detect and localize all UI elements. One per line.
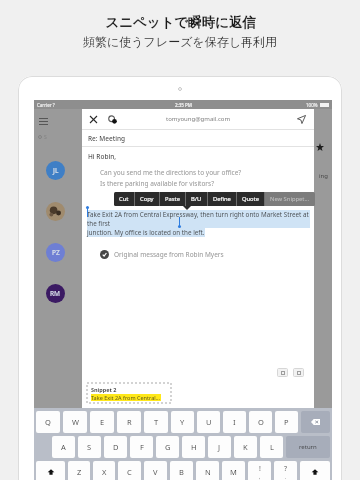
button[interactable]: R	[117, 411, 141, 433]
button[interactable]: V	[144, 461, 167, 480]
staticText: New Snippet...	[270, 195, 310, 203]
button[interactable]: Shift	[36, 461, 65, 480]
button[interactable]: B	[170, 461, 193, 480]
staticText: X	[102, 467, 107, 477]
staticText: Q	[45, 417, 51, 427]
button[interactable]: L	[260, 436, 283, 458]
button[interactable]: E	[90, 411, 114, 433]
button[interactable]: P	[275, 411, 298, 433]
button[interactable]: Cut	[114, 192, 134, 206]
button[interactable]: Backspace	[301, 411, 330, 433]
staticText: Y	[180, 417, 185, 427]
button[interactable]: D	[104, 436, 127, 458]
staticText: B	[179, 467, 184, 477]
staticText: T	[154, 417, 159, 427]
button[interactable]: Send	[295, 113, 307, 125]
button[interactable]: JL	[46, 161, 65, 180]
staticText: スニペットで瞬時に返信	[105, 14, 256, 31]
button[interactable]: N	[196, 461, 219, 480]
staticText: Take Exit 2A from Central...	[91, 394, 161, 401]
staticText: Is there parking available for visitors?	[100, 179, 214, 188]
button[interactable]: Snippet 2	[87, 383, 171, 403]
staticText: V	[153, 467, 158, 477]
staticText: PZ	[52, 248, 60, 257]
button[interactable]: I	[223, 411, 246, 433]
button[interactable]: U	[197, 411, 220, 433]
button[interactable]: Shift	[300, 461, 330, 480]
staticText: Re: Meeting	[88, 134, 126, 143]
button[interactable]	[46, 202, 65, 221]
staticText: 100%	[306, 102, 318, 108]
staticText: Paste	[165, 195, 180, 203]
staticText: Z	[77, 467, 82, 477]
button[interactable]: Define	[208, 192, 236, 206]
button[interactable]: Close	[88, 114, 99, 125]
button[interactable]: Next field	[293, 368, 304, 377]
staticText: K	[243, 442, 248, 452]
staticText: J	[218, 442, 221, 452]
staticText: Define	[213, 195, 231, 203]
staticText: !	[259, 464, 261, 474]
staticText: S	[87, 442, 92, 452]
staticText: P	[284, 417, 289, 427]
button[interactable]: Copy	[135, 192, 159, 206]
staticText: S	[44, 134, 47, 141]
staticText: Copy	[140, 195, 154, 203]
button[interactable]: return	[286, 436, 330, 458]
button[interactable]: S	[78, 436, 101, 458]
staticText: D	[113, 442, 119, 452]
staticText: JL	[53, 166, 59, 175]
button[interactable]: Attachments	[106, 113, 118, 125]
staticText: tomyoung@gmail.com	[166, 115, 231, 123]
button[interactable]: O	[249, 411, 272, 433]
staticText: return	[299, 443, 317, 451]
staticText: B/U	[191, 195, 202, 203]
button[interactable]: H	[182, 436, 205, 458]
staticText: I	[233, 417, 236, 427]
staticText: W	[72, 417, 79, 427]
staticText: C	[127, 467, 132, 477]
button[interactable]: Menu	[34, 113, 82, 130]
button[interactable]: PZ	[46, 243, 65, 262]
button[interactable]: RM	[46, 284, 65, 303]
button[interactable]: B/U	[186, 192, 207, 206]
button[interactable]: !	[248, 461, 271, 480]
button[interactable]: C	[118, 461, 141, 480]
staticText: Hi Robin,	[88, 152, 117, 161]
staticText: .	[285, 474, 287, 480]
staticText: ,	[259, 474, 261, 480]
staticText: G	[165, 442, 171, 452]
button[interactable]: Z	[68, 461, 90, 480]
button[interactable]: Previous field	[277, 368, 288, 377]
staticText: L	[270, 442, 274, 452]
staticText: RM	[50, 289, 61, 298]
button[interactable]: G	[156, 436, 179, 458]
button[interactable]: New Snippet...	[265, 192, 315, 206]
button[interactable]: F	[130, 436, 153, 458]
button[interactable]: W	[63, 411, 87, 433]
button[interactable]: K	[234, 436, 257, 458]
staticText: 2:35 PM	[175, 102, 192, 108]
button[interactable]: Quote	[237, 192, 264, 206]
button[interactable]: ?	[274, 461, 297, 480]
staticText: 頻繁に使うフレーズを保存し再利用	[83, 34, 277, 49]
staticText: Can you send me the directions to your o…	[100, 168, 242, 177]
staticText: Take Exit 2A from Central Expressway, th…	[87, 210, 310, 228]
staticText: U	[206, 417, 212, 427]
button[interactable]: Paste	[160, 192, 185, 206]
staticText: A	[61, 442, 66, 452]
button[interactable]: X	[93, 461, 115, 480]
staticText: F	[140, 442, 144, 452]
button[interactable]: Y	[171, 411, 194, 433]
staticText: ing	[319, 172, 328, 180]
staticText: Snippet 2	[91, 386, 117, 393]
staticText: H	[191, 442, 197, 452]
button[interactable]: T	[144, 411, 168, 433]
button[interactable]: M	[222, 461, 245, 480]
staticText: Quote	[242, 195, 259, 203]
button[interactable]: J	[208, 436, 231, 458]
button[interactable]: Q	[36, 411, 60, 433]
button[interactable]: A	[52, 436, 75, 458]
staticText: junction. My office is located on the le…	[87, 228, 205, 237]
button[interactable]: Star	[316, 143, 324, 151]
